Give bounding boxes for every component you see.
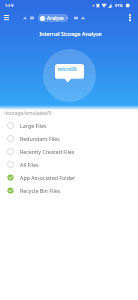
- button[interactable]: Menu: [0, 11, 13, 24]
- button[interactable]: Analyze: [38, 14, 68, 22]
- button[interactable]: Large Files: [0, 119, 138, 132]
- staticText: 1:19: [5, 3, 14, 9]
- staticText: 91%: [115, 3, 123, 8]
- staticText: App Associated Folder: [20, 174, 76, 181]
- button[interactable]: More options: [124, 11, 136, 23]
- staticText: Recently Created Files: [20, 148, 75, 155]
- staticText: /storage/emulated/0: [4, 110, 52, 117]
- staticText: Recycle Bin Files: [20, 187, 61, 194]
- staticText: All Files: [20, 161, 39, 168]
- button[interactable]: Filter: [74, 16, 78, 20]
- staticText: Large Files: [20, 122, 47, 129]
- button[interactable]: Recycle Bin Files: [0, 184, 138, 197]
- staticText: microSD: [58, 66, 77, 72]
- button[interactable]: Redundant Files: [0, 132, 138, 145]
- button[interactable]: All Files: [0, 158, 138, 171]
- staticText: Analyze: [47, 15, 64, 21]
- staticText: Redundant Files: [20, 135, 60, 142]
- button[interactable]: Recently Created Files: [0, 145, 138, 158]
- button[interactable]: Select: [81, 16, 85, 20]
- button[interactable]: Sort: [23, 16, 27, 20]
- button[interactable]: App Associated Folder: [0, 171, 138, 184]
- button[interactable]: View mode: [30, 16, 34, 20]
- staticText: Internal Storage Analyze: [39, 30, 102, 37]
